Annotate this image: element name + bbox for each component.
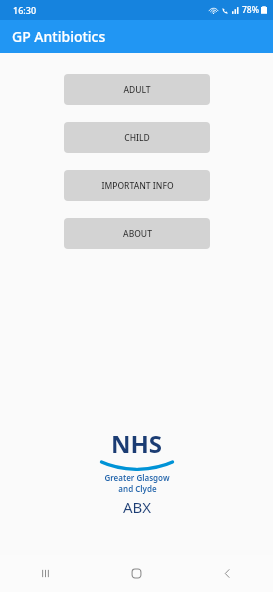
button[interactable]: ADULT [64,74,210,105]
staticText: 78% [242,4,259,16]
staticText: CHILD [124,132,150,144]
staticText: NHS [111,427,163,460]
button[interactable]: Home [91,555,182,592]
staticText: 16:30 [13,4,37,16]
button[interactable]: Back [182,555,273,592]
staticText: ABX [123,497,152,517]
staticText: Greater Glasgow [104,472,170,483]
button[interactable]: Recent apps [0,555,91,592]
staticText: and Clyde [118,483,157,494]
staticText: IMPORTANT INFO [101,180,174,192]
button[interactable]: IMPORTANT INFO [64,170,210,201]
staticText: GP Antibiotics [12,27,106,46]
button[interactable]: CHILD [64,122,210,153]
button[interactable]: ABOUT [64,218,210,249]
staticText: ABOUT [123,228,152,240]
staticText: ADULT [123,84,151,96]
